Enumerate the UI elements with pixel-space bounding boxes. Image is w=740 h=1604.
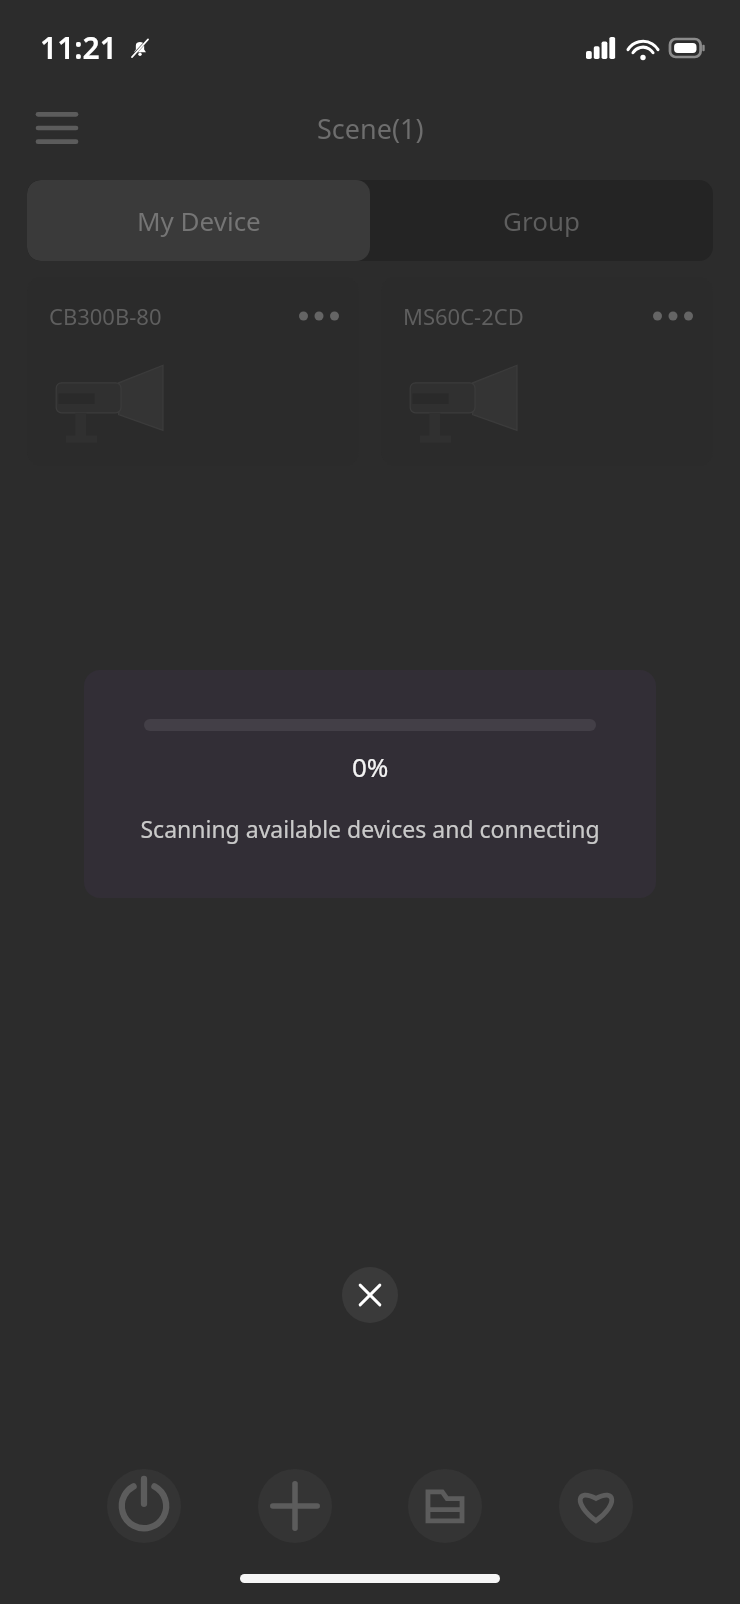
button[interactable]: Favorites <box>559 1469 633 1543</box>
button[interactable]: More options <box>651 301 695 331</box>
staticText: Group <box>503 203 580 238</box>
button[interactable]: Add <box>258 1469 332 1543</box>
button[interactable]: More options <box>297 301 341 331</box>
staticText: Scanning available devices and connectin… <box>140 813 600 844</box>
button[interactable]: Close <box>342 1267 398 1323</box>
button[interactable]: Menu <box>30 101 84 155</box>
button[interactable]: My Device <box>27 180 370 261</box>
staticText: 11:21 <box>40 27 117 68</box>
staticText: MS60C-2CD567 <box>403 301 527 331</box>
button[interactable]: MS60C-2CD567 <box>381 277 713 466</box>
button[interactable]: Group <box>370 180 713 261</box>
staticText: Scene(1) <box>317 110 424 147</box>
staticText: 0% <box>352 749 389 784</box>
button[interactable]: Folder <box>408 1469 482 1543</box>
staticText: CB300B-801A5F <box>49 301 173 331</box>
button[interactable]: CB300B-801A5F <box>27 277 359 466</box>
button[interactable]: Power <box>107 1469 181 1543</box>
staticText: My Device <box>137 203 261 238</box>
